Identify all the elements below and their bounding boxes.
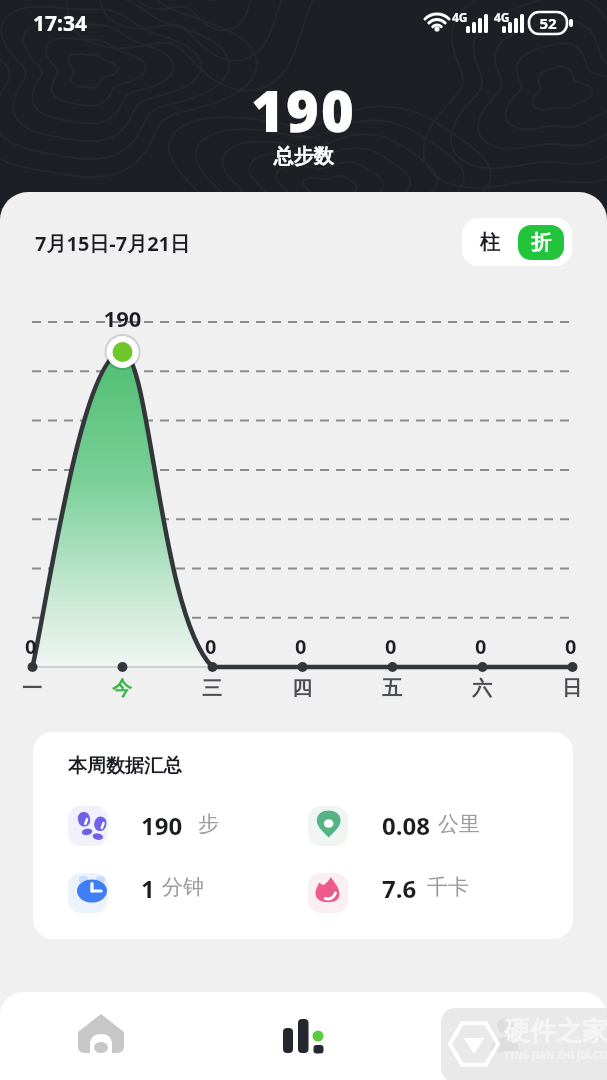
button[interactable]: 柱 [462,218,518,266]
staticText: 52 [529,13,567,33]
staticText: 0 [205,633,217,660]
staticText: 0.08 [382,809,430,842]
staticText: 总步数 [0,144,607,169]
staticText: 190 [92,303,153,333]
staticText: 硬件之家 [504,1015,607,1048]
button[interactable] [308,873,348,913]
staticText: 190 [0,72,607,148]
button[interactable]: 柱 [462,218,572,266]
staticText: 190 [141,809,183,842]
staticText: 一 [22,676,42,701]
staticText: 四 [292,676,312,701]
staticText: 今 [112,676,132,701]
button[interactable] [270,1002,336,1068]
staticText: 公里 [438,811,480,837]
staticText: 五 [382,676,402,701]
staticText: YING JIAN ZHI JIA.COM [504,1048,607,1062]
staticText: 折 [531,230,551,255]
staticText: 千卡 [427,874,469,900]
staticText: 7月15日-7月21日 [35,230,191,257]
staticText: 4G [494,9,510,25]
staticText: 4G [452,9,468,25]
staticText: 0 [475,633,487,660]
staticText: 分钟 [162,874,204,900]
staticText: 步 [198,811,219,837]
staticText: 7.6 [382,872,417,905]
button[interactable] [68,1002,134,1068]
staticText: 日 [562,676,582,701]
staticText: 柱 [480,230,500,255]
button[interactable] [68,806,108,846]
staticText: 0 [565,633,577,660]
button[interactable] [68,873,108,913]
button[interactable] [308,806,348,846]
staticText: 三 [202,676,222,701]
staticText: 0 [385,633,397,660]
staticText: 六 [472,676,492,701]
staticText: 0 [25,633,37,660]
staticText: 1 [141,872,155,905]
button[interactable]: 折 [518,225,564,260]
staticText: 本周数据汇总 [68,754,182,778]
staticText: 17:34 [33,9,87,38]
staticText: 0 [295,633,307,660]
